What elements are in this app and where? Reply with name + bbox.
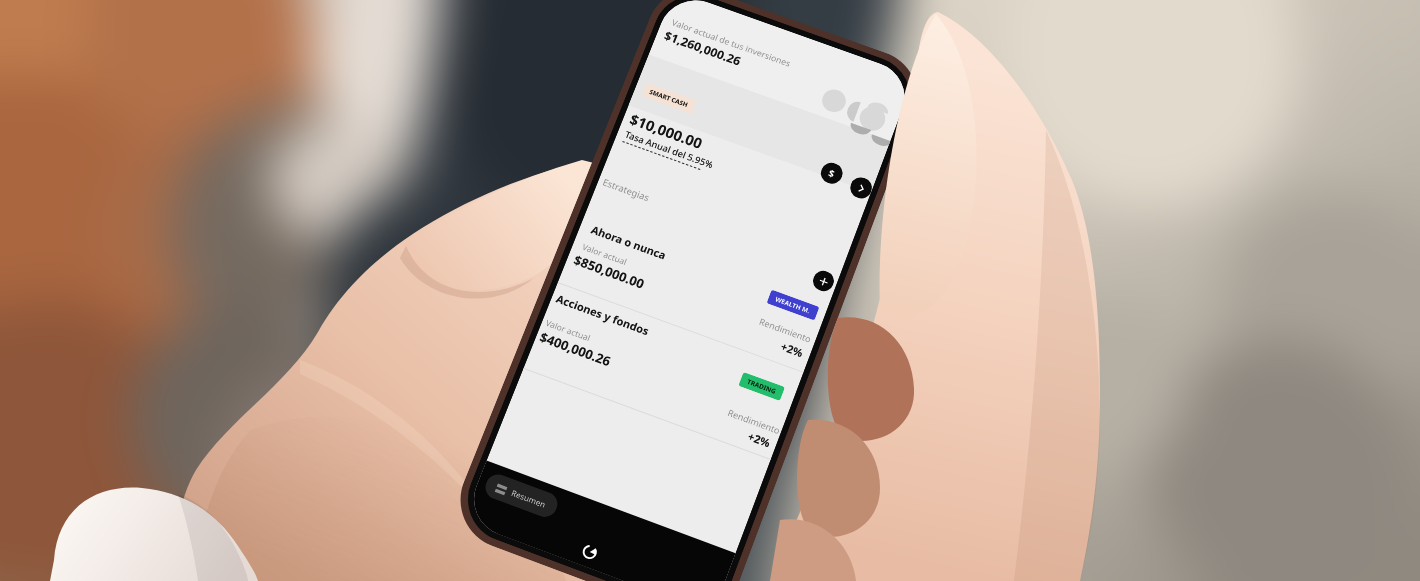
staticText: $400,000.26 [537, 328, 614, 370]
staticText: Tasa Anual del 5.95% [623, 128, 715, 171]
button[interactable]: SMART CASH [648, 87, 690, 109]
staticText: +2% [746, 428, 773, 450]
staticText: Estrategias [601, 176, 652, 204]
button[interactable]: Resumen [495, 481, 548, 510]
button[interactable]: TRADING [746, 377, 777, 396]
staticText: SMART CASH [648, 87, 690, 109]
staticText: Acciones y fondos [554, 291, 651, 338]
staticText: $10,000.00 [627, 109, 706, 153]
button[interactable]: Ver mas [847, 174, 875, 201]
staticText: Resumen [510, 487, 548, 510]
staticText: Rendimiento [726, 406, 783, 436]
staticText: $ [827, 166, 837, 181]
staticText: Valor actual [580, 241, 628, 268]
staticText: +2% [779, 339, 806, 360]
staticText: WEALTH M. [774, 295, 812, 315]
staticText: $1,260,000.26 [662, 28, 744, 69]
staticText: Ahora o nunca [589, 222, 669, 263]
staticText: Valor actual de tus inversiones [670, 16, 793, 69]
staticText: $850,000.00 [571, 251, 647, 293]
button[interactable]: Depositar [818, 160, 846, 187]
button[interactable]: Portafolio [580, 543, 599, 561]
button[interactable]: Agregar [810, 268, 837, 294]
staticText: TRADING [746, 377, 777, 396]
staticText: Rendimiento [758, 315, 814, 345]
button[interactable]: WEALTH M. [774, 295, 812, 315]
staticText: Valor actual [544, 317, 592, 344]
